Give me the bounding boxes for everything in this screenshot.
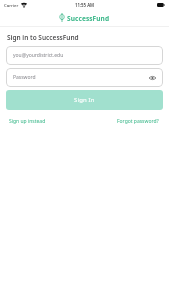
staticText: Sign up instead — [9, 118, 46, 125]
staticText: you@yourdistrict.edu — [13, 52, 64, 59]
staticText: Password — [13, 74, 36, 81]
button[interactable]: Password — [6, 68, 163, 87]
button[interactable]: Sign In — [6, 90, 163, 110]
staticText: 11:55 AM — [75, 2, 95, 8]
button[interactable]: Forgot password? — [117, 118, 159, 125]
staticText: Carrier — [4, 2, 19, 8]
staticText: Forgot password? — [117, 118, 159, 125]
button[interactable]: Sign up instead — [9, 118, 46, 125]
button[interactable]: you@yourdistrict.edu — [6, 46, 163, 65]
staticText: Sign in to SuccessFund — [7, 33, 79, 42]
button[interactable]: Show password — [148, 73, 157, 82]
staticText: SuccessFund — [67, 14, 110, 23]
staticText: Sign In — [74, 96, 95, 104]
